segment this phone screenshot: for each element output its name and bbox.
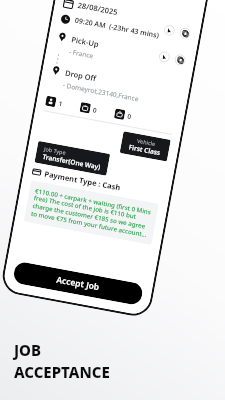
staticText: Accept Job [55,273,101,293]
button[interactable]: Job Type [34,141,110,176]
button[interactable]: Copy pick-up address [174,53,186,66]
staticText: - France [68,47,95,60]
staticText: Pick-Up [71,34,100,49]
staticText: 09:20 AM (-23hr 43 mins) [74,15,160,41]
staticText: ACCEPTANCE [14,362,110,382]
button[interactable]: Navigate to pick-up [158,50,171,63]
staticText: Payment Type : Cash [44,169,121,192]
staticText: Job Type [43,145,66,156]
button[interactable]: Vehicle [120,131,171,162]
staticText: First Class [128,142,161,157]
staticText: - Domeyrot,23140,France [62,80,140,103]
staticText: JOB [14,340,42,360]
button[interactable]: Accept Job [12,261,144,306]
staticText: Vehicle [137,137,157,147]
staticText: Drop Off [64,68,98,83]
staticText: 0 [92,105,98,115]
staticText: Transfer(One Way) [42,152,102,171]
button[interactable]: Copy details [179,27,191,40]
button[interactable]: Navigate [163,24,176,37]
staticText: 1 [58,99,63,108]
staticText: 0 [127,112,132,121]
button[interactable]: Hard Allocated [66,0,124,1]
staticText: €110.00 + carpark + waiting (first 0 Min… [30,186,152,239]
staticText: 28/08/2025 [77,0,119,17]
